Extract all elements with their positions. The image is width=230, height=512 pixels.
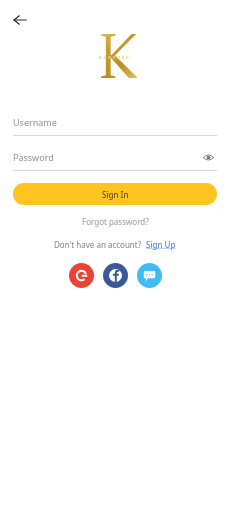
button[interactable]: Sign In — [13, 183, 217, 205]
button[interactable]: Sign Up — [146, 239, 176, 250]
staticText: Sign Up — [146, 239, 176, 250]
staticText: Forgot password? — [82, 216, 149, 227]
button[interactable]: Show password — [199, 148, 217, 166]
button[interactable]: Sign in with Messenger — [137, 263, 162, 288]
staticText: Username — [13, 116, 57, 128]
button[interactable]: Username — [13, 109, 217, 135]
staticText: Sign In — [102, 189, 129, 200]
button[interactable]: Sign in with Google — [69, 263, 94, 288]
button[interactable]: Sign in with Facebook — [103, 263, 128, 288]
button[interactable]: Back — [6, 6, 34, 34]
staticText: Password — [13, 151, 54, 163]
button[interactable]: Forgot password? — [74, 213, 157, 230]
staticText: KANDORE — [99, 55, 131, 60]
button[interactable]: Password — [13, 144, 217, 170]
staticText: Don't have an account? — [54, 239, 142, 250]
